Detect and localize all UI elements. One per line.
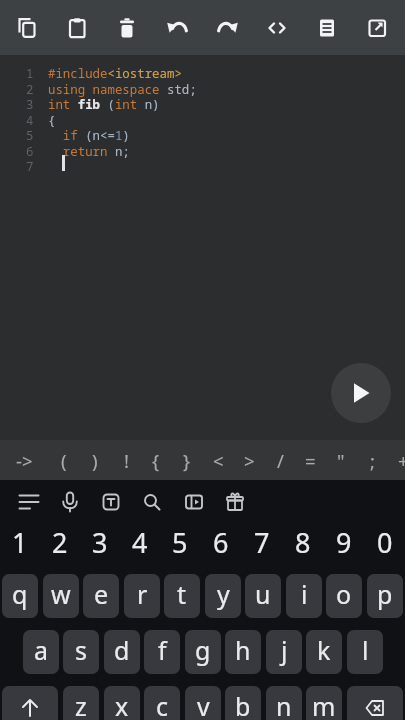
button[interactable] (303, 4, 351, 52)
button[interactable]: i (286, 574, 322, 618)
button[interactable]: k (306, 630, 342, 674)
button[interactable]: o (326, 574, 362, 618)
button[interactable] (216, 483, 254, 521)
button[interactable] (10, 483, 48, 521)
button[interactable]: s (63, 630, 99, 674)
button[interactable] (204, 4, 252, 52)
staticText: u (255, 577, 271, 611)
button[interactable]: w (43, 574, 79, 618)
button[interactable] (133, 483, 171, 521)
staticText: < (213, 448, 224, 473)
staticText: 1 (26, 65, 34, 82)
button[interactable]: 8 (282, 520, 323, 564)
button[interactable] (2, 686, 58, 720)
staticText: h (235, 633, 251, 667)
button[interactable]: n (266, 686, 302, 720)
button[interactable]: r (124, 574, 160, 618)
button[interactable]: } (172, 440, 202, 480)
staticText: d (114, 633, 130, 667)
button[interactable]: b (225, 686, 261, 720)
staticText: / (277, 448, 284, 473)
button[interactable]: = (295, 440, 325, 480)
button[interactable]: ! (111, 440, 141, 480)
button[interactable]: u (245, 574, 281, 618)
button[interactable]: 7 (241, 520, 282, 564)
button[interactable]: + (388, 440, 405, 480)
button[interactable]: q (2, 574, 38, 618)
button[interactable]: a (23, 630, 59, 674)
button[interactable]: 0 (364, 520, 405, 564)
staticText: { (48, 112, 56, 129)
button[interactable] (51, 483, 89, 521)
button[interactable]: y (205, 574, 241, 618)
button[interactable]: p (367, 574, 403, 618)
button[interactable]: / (265, 440, 295, 480)
button[interactable]: z (63, 686, 99, 720)
button[interactable] (53, 4, 101, 52)
staticText: ) (92, 448, 98, 473)
button[interactable]: c (144, 686, 180, 720)
button[interactable]: j (266, 630, 302, 674)
button[interactable]: 5 (160, 520, 200, 564)
staticText: m (312, 689, 336, 720)
staticText: + (398, 448, 405, 473)
button[interactable] (331, 363, 391, 423)
button[interactable] (3, 4, 51, 52)
staticText: 1 (12, 524, 28, 561)
button[interactable]: ) (80, 440, 110, 480)
staticText: 7 (254, 524, 270, 561)
button[interactable]: g (185, 630, 221, 674)
button[interactable]: x (104, 686, 140, 720)
staticText: g (195, 633, 211, 667)
button[interactable]: v (185, 686, 221, 720)
staticText: 6 (213, 524, 229, 561)
staticText: i (301, 577, 308, 611)
staticText: ( (61, 448, 67, 473)
staticText: w (51, 577, 71, 611)
button[interactable]: h (225, 630, 261, 674)
staticText: v (197, 689, 210, 720)
staticText: z (75, 689, 87, 720)
button[interactable]: > (234, 440, 264, 480)
staticText: ! (124, 448, 129, 473)
button[interactable]: e (83, 574, 119, 618)
button[interactable] (92, 483, 130, 521)
button[interactable]: -> (9, 440, 39, 480)
button[interactable]: l (347, 630, 383, 674)
button[interactable] (103, 4, 151, 52)
staticText: o (336, 577, 352, 611)
button[interactable]: 9 (323, 520, 364, 564)
staticText: = (305, 448, 316, 473)
button[interactable]: f (144, 630, 180, 674)
staticText: -> (16, 448, 33, 473)
staticText: j (281, 633, 288, 667)
button[interactable] (347, 686, 403, 720)
button[interactable] (153, 4, 201, 52)
staticText: c (156, 689, 169, 720)
button[interactable]: t (164, 574, 200, 618)
button[interactable]: ; (357, 440, 387, 480)
button[interactable]: 2 (40, 520, 80, 564)
button[interactable]: { (141, 440, 171, 480)
button[interactable]: ( (49, 440, 79, 480)
button[interactable]: " (326, 440, 356, 480)
button[interactable] (175, 483, 213, 521)
staticText: 4 (132, 524, 148, 561)
button[interactable] (353, 4, 401, 52)
button[interactable]: 3 (80, 520, 120, 564)
button[interactable]: 1 (0, 520, 40, 564)
button[interactable]: m (306, 686, 342, 720)
button[interactable]: 6 (200, 520, 241, 564)
button[interactable]: < (203, 440, 233, 480)
staticText: n (276, 689, 292, 720)
staticText: > (244, 448, 255, 473)
staticText: 2 (52, 524, 68, 561)
button[interactable]: d (104, 630, 140, 674)
button[interactable] (253, 4, 301, 52)
staticText: 5 (26, 127, 34, 144)
staticText: #include<iostream> (48, 65, 182, 82)
staticText: 0 (377, 524, 393, 561)
staticText: x (115, 689, 129, 720)
staticText: t (177, 577, 187, 611)
button[interactable]: 4 (120, 520, 160, 564)
